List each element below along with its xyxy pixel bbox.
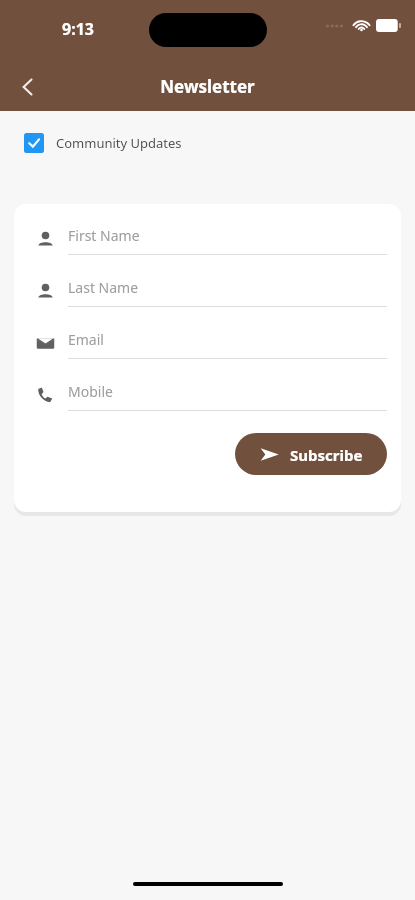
button[interactable]: Mobile	[34, 382, 387, 411]
staticText: Newsletter	[160, 75, 255, 98]
button[interactable]: Back	[6, 65, 50, 109]
staticText: 9:13	[62, 18, 94, 40]
button[interactable]: Subscribe	[235, 433, 387, 475]
staticText: Email	[68, 330, 104, 349]
button[interactable]: First Name	[34, 226, 387, 255]
button[interactable]: Email	[34, 330, 387, 359]
staticText: Last Name	[68, 278, 139, 297]
staticText: Mobile	[68, 382, 113, 401]
staticText: First Name	[68, 226, 140, 245]
staticText: Community Updates	[56, 134, 182, 152]
button[interactable]: Community Updates	[24, 133, 182, 153]
button[interactable]: Last Name	[34, 278, 387, 307]
staticText: Subscribe	[290, 445, 363, 465]
